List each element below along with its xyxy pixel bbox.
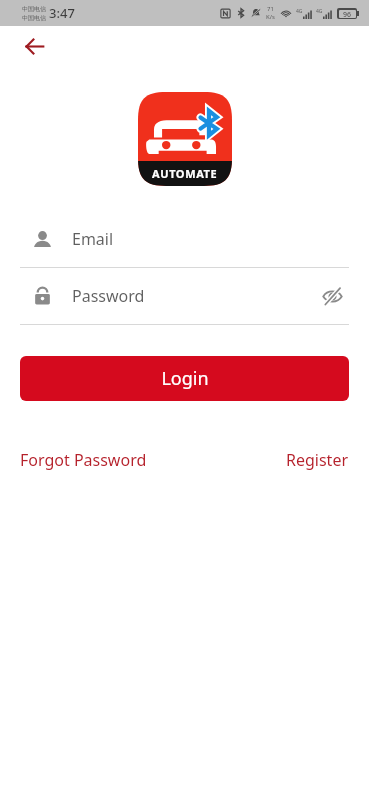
button[interactable]: Toggle password visibility (315, 279, 349, 313)
staticText: Email (72, 228, 114, 250)
button[interactable]: Register (286, 443, 349, 477)
button[interactable]: Forgot Password (20, 443, 147, 477)
button[interactable]: Back (14, 26, 54, 66)
button[interactable]: Password (0, 268, 369, 324)
staticText: AUTOMATE (152, 166, 218, 181)
staticText: Register (286, 449, 349, 471)
button[interactable]: Login (20, 356, 349, 401)
staticText: 71 (267, 5, 274, 13)
staticText: 3:47 (49, 4, 75, 22)
staticText: 96 (343, 10, 352, 18)
staticText: Login (161, 366, 209, 391)
staticText: K/s (266, 13, 275, 21)
staticText: Password (72, 285, 145, 307)
staticText: 4G (316, 8, 323, 15)
staticText: 4G (296, 8, 303, 15)
button[interactable]: Email (0, 211, 369, 267)
staticText: Forgot Password (20, 449, 147, 471)
staticText: 中国电信 (22, 14, 46, 22)
staticText: 中国电信 (22, 5, 46, 13)
